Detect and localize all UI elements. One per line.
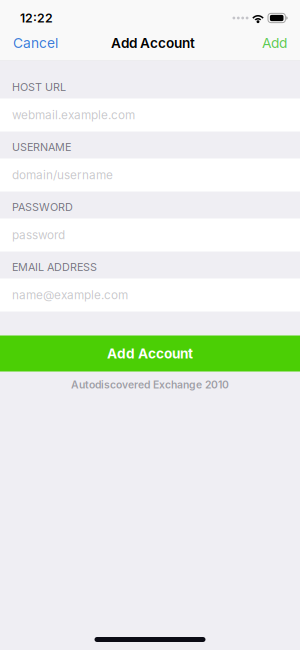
staticText: Add Account [107,345,193,362]
button[interactable]: webmail.example.com [0,98,300,131]
staticText: name@example.com [12,288,128,302]
staticText: PASSWORD [12,200,73,213]
staticText: Autodiscovered Exchange 2010 [71,378,229,391]
staticText: USERNAME [12,140,71,153]
staticText: password [12,228,65,242]
staticText: webmail.example.com [12,108,135,122]
staticText: Add [262,35,287,51]
staticText: Add Account [111,35,195,51]
button[interactable]: Add Account [0,335,300,371]
button[interactable]: Cancel [0,27,68,59]
staticText: 12:22 [20,11,53,25]
button[interactable]: name@example.com [0,278,300,311]
button[interactable]: password [0,218,300,251]
staticText: domain/username [12,168,113,182]
button[interactable]: Add [252,27,300,59]
button[interactable]: domain/username [0,158,300,191]
staticText: Cancel [13,35,58,51]
staticText: HOST URL [12,80,66,93]
staticText: EMAIL ADDRESS [12,260,97,273]
